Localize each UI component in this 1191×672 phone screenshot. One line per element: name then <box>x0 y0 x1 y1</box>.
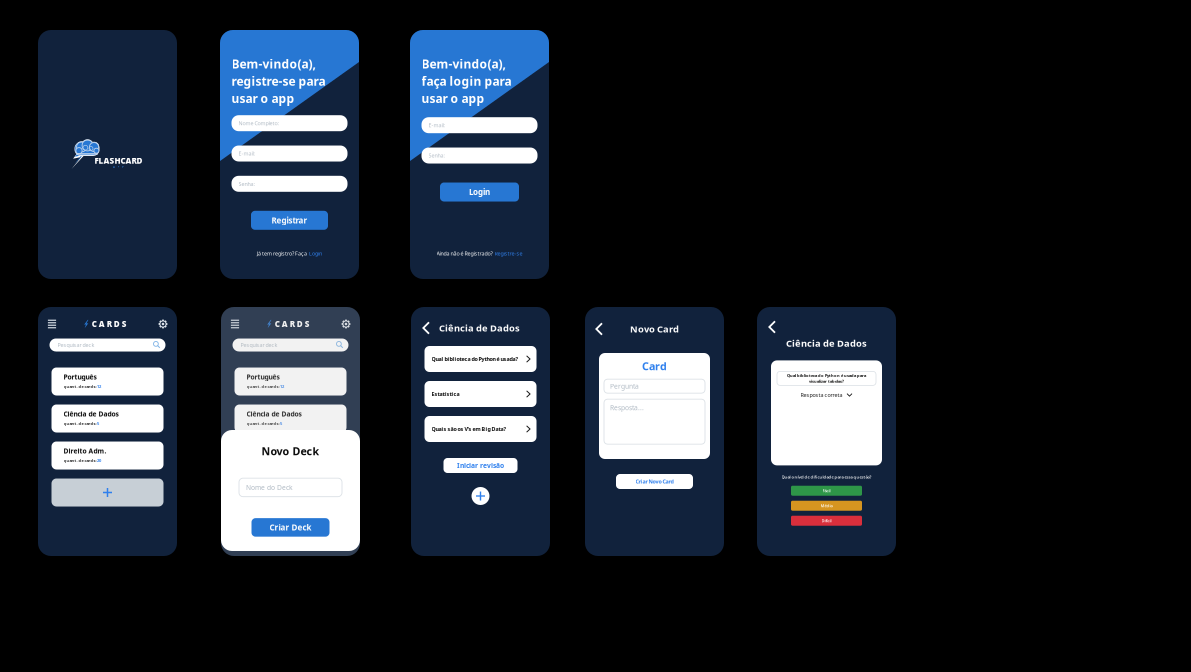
staticText: E-mail: <box>238 150 254 157</box>
staticText: Criar Novo Card <box>635 478 673 485</box>
staticText: Português <box>246 372 279 381</box>
staticText: Ainda não é Registrado? <box>436 250 492 257</box>
staticText: Senha: <box>238 180 254 187</box>
staticText: usar o app <box>421 90 484 106</box>
button[interactable]: Português <box>51 367 163 395</box>
staticText: Ciência de Dados <box>246 409 301 418</box>
staticText: Registrar <box>271 215 307 226</box>
staticText: Card <box>642 359 667 373</box>
staticText: Estatística <box>431 390 459 398</box>
staticText: Ciência de Dados <box>63 409 118 418</box>
staticText: Iniciar revisão <box>457 461 504 470</box>
staticText: Pergunta <box>610 382 639 391</box>
staticText: Ciência de Dados <box>786 337 867 349</box>
staticText: Pesquisar deck <box>240 341 277 349</box>
button[interactable]: Voltar <box>593 321 606 337</box>
button[interactable]: Ainda não é Registrado? <box>436 250 522 257</box>
staticText: FLASHCARD <box>94 155 142 166</box>
button[interactable]: Ciência de Dados <box>51 404 163 432</box>
button[interactable]: Menu <box>44 317 60 331</box>
button[interactable]: Difícil <box>791 516 862 526</box>
staticText: Ciência de Dados <box>439 322 520 334</box>
staticText: C A R D S <box>275 319 310 329</box>
button[interactable]: Direito Adm. <box>51 441 163 469</box>
staticText: Novo Deck <box>261 444 319 458</box>
staticText: Quais são os V's em Big Data? <box>431 425 506 433</box>
staticText: 12 <box>97 384 101 389</box>
staticText: quant. de cards: <box>246 421 279 426</box>
button[interactable]: Estatística <box>424 381 536 407</box>
button[interactable]: Configurações <box>155 317 171 331</box>
staticText: Novo Card <box>630 323 679 335</box>
button[interactable]: Novo deck <box>234 478 346 506</box>
button[interactable]: Voltar <box>766 319 779 335</box>
button[interactable]: Menu <box>227 317 243 331</box>
staticText: 20 <box>97 458 101 463</box>
staticText: A <box>113 165 115 169</box>
button[interactable]: Novo card <box>471 487 489 505</box>
staticText: Login <box>309 250 322 257</box>
staticText: visualizar tabelas? <box>809 379 844 384</box>
staticText: Qual biblioteca do Python é usada? <box>431 355 518 363</box>
staticText: P <box>122 165 124 169</box>
button[interactable]: Ciência de Dados <box>234 404 346 432</box>
staticText: quant. de cards: <box>246 384 279 389</box>
staticText: Direito Adm. <box>246 446 289 455</box>
staticText: Já tem registro? Faça <box>257 250 307 257</box>
button[interactable]: Criar Deck <box>251 518 329 537</box>
button[interactable]: Qual biblioteca do Python é usada? <box>424 346 536 372</box>
button[interactable]: Criar Novo Card <box>616 474 693 489</box>
staticText: Fácil <box>822 488 830 493</box>
button[interactable]: Voltar <box>420 320 433 336</box>
staticText: quant. de cards: <box>63 421 96 426</box>
staticText: faça login para <box>421 73 511 89</box>
staticText: Difícil <box>821 518 831 523</box>
staticText: Login <box>469 187 490 197</box>
staticText: Registre-se <box>494 250 522 257</box>
staticText: Resposta correta <box>800 391 842 398</box>
button[interactable]: Login <box>440 182 519 201</box>
staticText: registre-se para <box>231 73 325 89</box>
staticText: Qual biblioteca do Python é usada para <box>787 373 866 378</box>
staticText: Criar Deck <box>269 522 311 533</box>
staticText: Médio <box>820 503 832 508</box>
button[interactable]: Fácil <box>791 486 862 496</box>
staticText: quant. de cards: <box>63 458 96 463</box>
staticText: Resposta... <box>610 403 644 412</box>
staticText: 5 <box>97 421 99 426</box>
staticText: 12 <box>280 384 284 389</box>
button[interactable]: Direito Adm. <box>234 441 346 469</box>
button[interactable]: Quais são os V's em Big Data? <box>424 416 536 442</box>
button[interactable]: Iniciar revisão <box>443 458 517 473</box>
staticText: Senha: <box>428 152 444 159</box>
staticText: 5 <box>280 421 282 426</box>
staticText: Bem-vindo(a), <box>421 56 505 72</box>
staticText: usar o app <box>231 90 294 106</box>
button[interactable]: Português <box>234 367 346 395</box>
button[interactable]: Médio <box>791 501 862 511</box>
staticText: Nome Completo: <box>238 120 278 127</box>
staticText: P <box>117 165 119 169</box>
staticText: E-mail: <box>428 122 444 129</box>
button[interactable]: Novo deck <box>51 478 163 506</box>
button[interactable]: Registrar <box>251 211 328 230</box>
staticText: Bem-vindo(a), <box>231 56 315 72</box>
button[interactable]: Configurações <box>338 317 354 331</box>
staticText: C A R D S <box>92 319 127 329</box>
staticText: Qual o nível de dificuldade para essa qu… <box>781 474 871 480</box>
staticText: Português <box>63 372 96 381</box>
staticText: quant. de cards: <box>63 384 96 389</box>
staticText: Direito Adm. <box>63 446 106 455</box>
staticText: Nome do Deck <box>246 483 293 492</box>
button[interactable]: Já tem registro? Faça <box>257 250 322 257</box>
staticText: Pesquisar deck <box>57 341 94 349</box>
